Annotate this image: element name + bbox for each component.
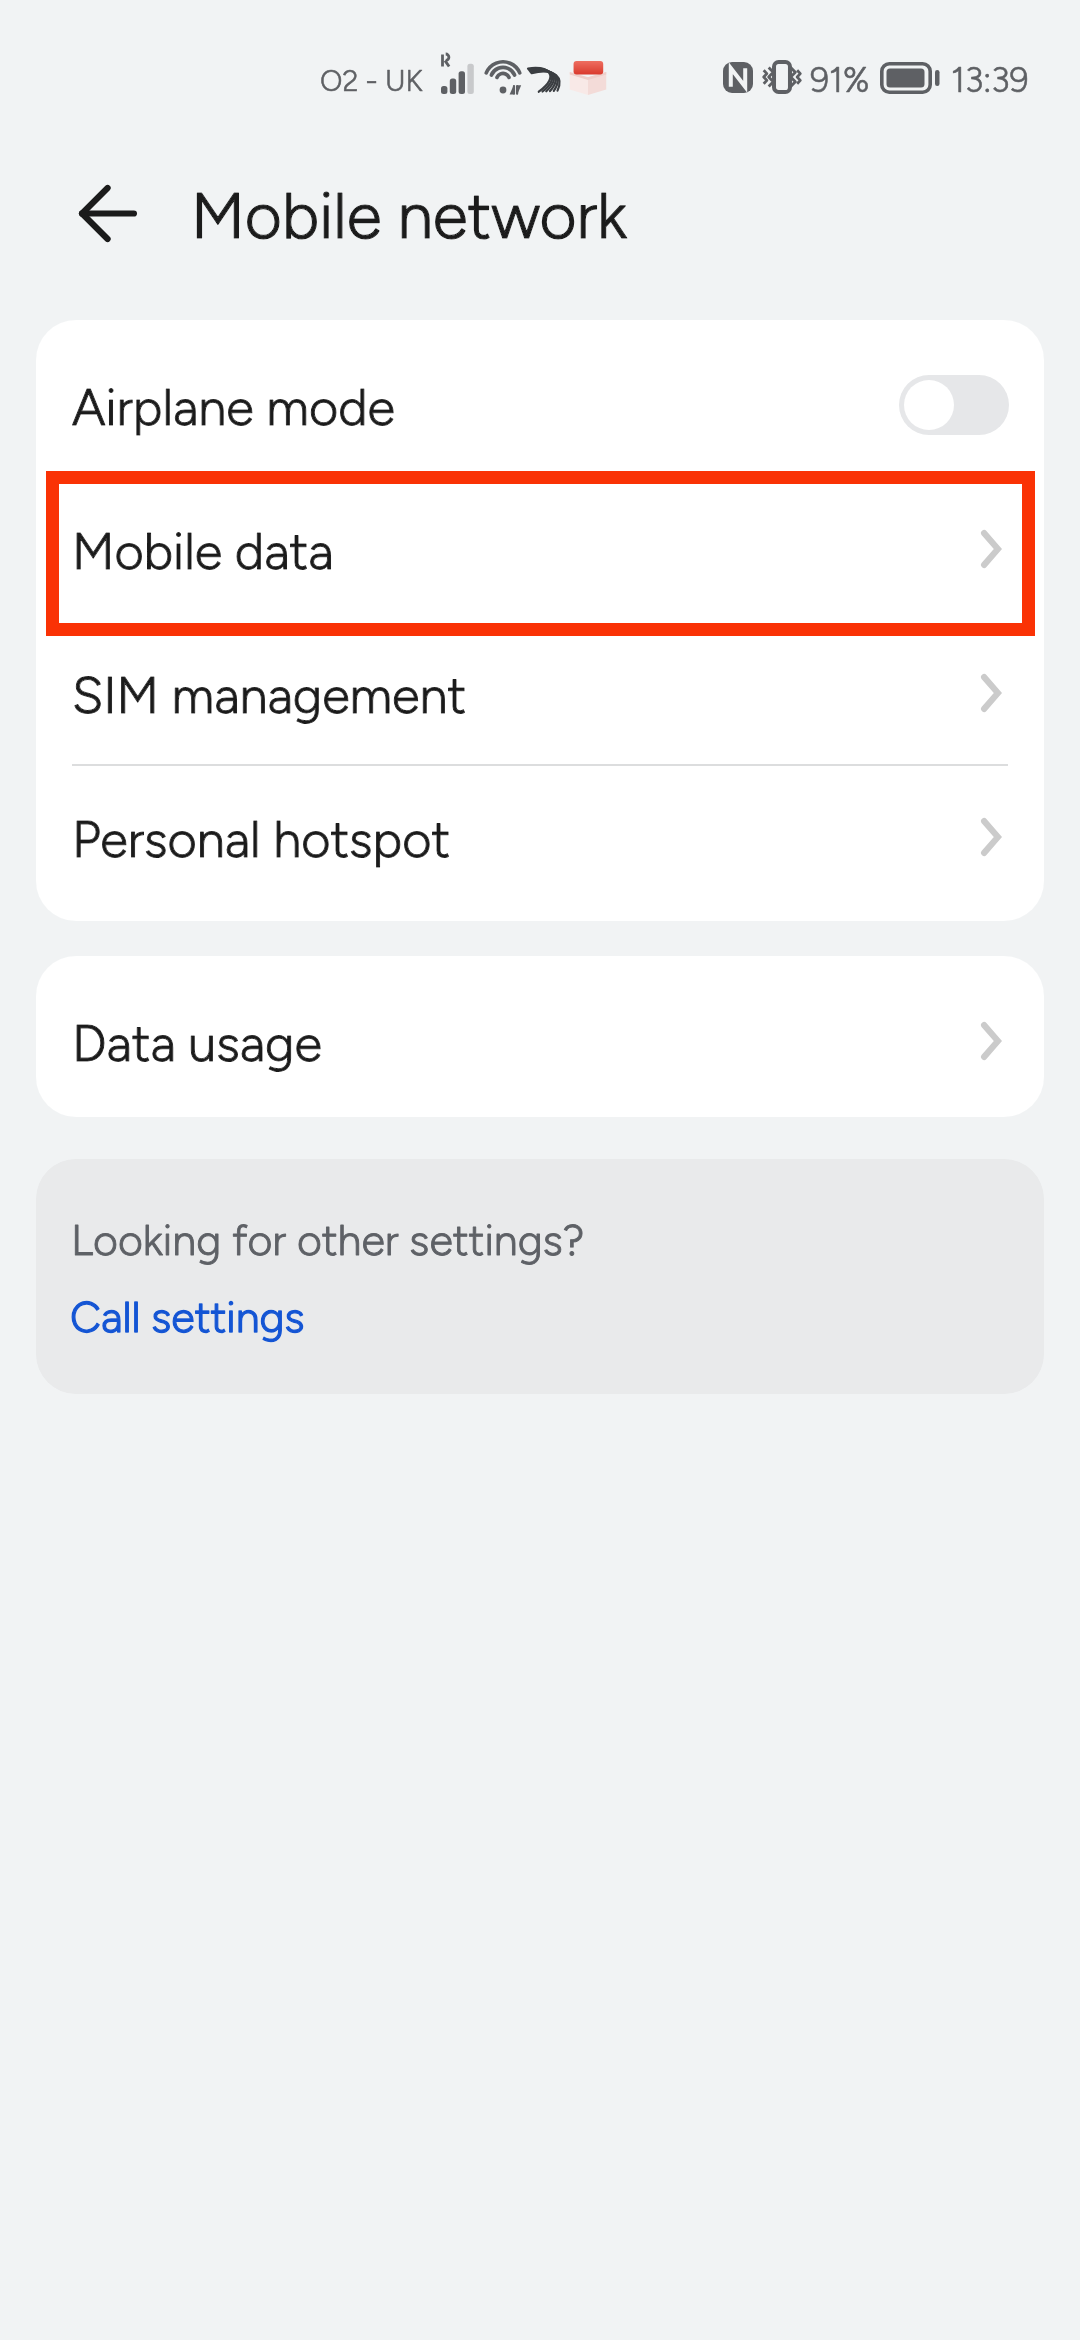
staticText: 91% — [810, 60, 870, 101]
button[interactable]: Airplane mode switch — [899, 375, 1009, 435]
button[interactable]: Data usage — [36, 956, 1044, 1117]
staticText: SIM management — [72, 665, 467, 726]
staticText: Looking for other settings? — [71, 1214, 585, 1266]
button[interactable]: SIM management — [36, 635, 1044, 765]
button[interactable]: Personal hotspot — [36, 765, 1044, 921]
staticText: Data usage — [72, 1013, 322, 1074]
staticText: Airplane mode — [72, 377, 395, 438]
staticText: Airplane mode — [72, 377, 395, 438]
button[interactable]: Mobile data — [36, 471, 1044, 635]
button[interactable]: Call settings — [70, 1290, 310, 1352]
staticText: 13:39 — [951, 60, 1029, 101]
staticText: Mobile data — [72, 521, 334, 582]
staticText: 91% — [810, 60, 870, 101]
staticText: Looking for other settings? — [71, 1214, 585, 1266]
staticText: Call settings — [70, 1291, 305, 1343]
staticText: Personal hotspot — [72, 809, 451, 870]
staticText: Mobile network — [191, 177, 627, 254]
staticText: Call settings — [70, 1291, 305, 1343]
staticText: Data usage — [72, 1013, 322, 1074]
staticText: O2 - UK — [320, 63, 423, 98]
staticText: SIM management — [72, 665, 467, 726]
staticText: 13:39 — [951, 60, 1029, 101]
staticText: Personal hotspot — [72, 809, 451, 870]
button[interactable]: Back — [61, 166, 155, 260]
button[interactable]: Airplane mode — [36, 320, 1044, 471]
staticText: O2 - UK — [320, 63, 423, 98]
staticText: Mobile network — [191, 177, 627, 254]
staticText: Mobile data — [72, 521, 334, 582]
